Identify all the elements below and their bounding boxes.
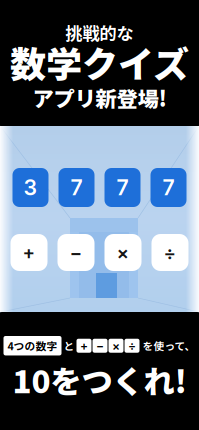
button[interactable]: 7 [104, 168, 140, 207]
button[interactable]: + [10, 234, 47, 271]
staticText: 挑戦的な [65, 20, 133, 45]
button[interactable]: 7 [150, 168, 186, 207]
staticText: アプリ新登場! [32, 82, 166, 113]
staticText: 7 [116, 175, 128, 200]
staticText: 7 [162, 175, 174, 200]
staticText: + [22, 241, 35, 264]
staticText: × [112, 338, 120, 353]
staticText: 3 [23, 175, 37, 200]
staticText: ÷ [163, 241, 176, 264]
button[interactable]: 3 [12, 168, 48, 207]
staticText: − [96, 338, 104, 353]
staticText: 10をつくれ! [12, 357, 186, 402]
staticText: ÷ [128, 338, 136, 353]
staticText: を使って、 [142, 338, 195, 353]
staticText: × [116, 241, 129, 264]
staticText: と [63, 338, 74, 353]
staticText: − [69, 241, 82, 264]
staticText: 4つの数字 [7, 338, 57, 353]
button[interactable]: 7 [58, 168, 94, 207]
button[interactable]: × [104, 234, 141, 271]
button[interactable]: − [57, 234, 94, 271]
button[interactable]: ÷ [151, 234, 188, 271]
staticText: 数学クイズ [10, 36, 189, 88]
staticText: 7 [70, 175, 82, 200]
staticText: + [80, 338, 88, 353]
